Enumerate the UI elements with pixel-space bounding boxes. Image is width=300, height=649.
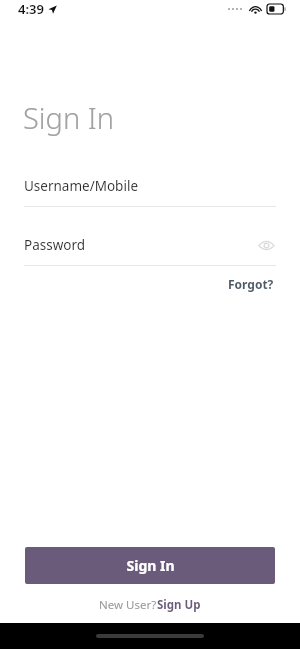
- staticText: Sign In: [126, 556, 175, 575]
- staticText: Username/Mobile: [24, 177, 138, 195]
- staticText: New User?: [99, 597, 157, 613]
- button[interactable]: Show password: [256, 235, 276, 255]
- button[interactable]: Sign Up: [157, 597, 201, 613]
- button[interactable]: Password: [24, 236, 256, 254]
- button[interactable]: Forgot?: [226, 274, 276, 294]
- button[interactable]: Username/Mobile: [24, 177, 276, 207]
- staticText: Sign Up: [157, 597, 201, 613]
- staticText: 4:39: [18, 0, 44, 18]
- button[interactable]: Sign In: [25, 547, 275, 584]
- other: Home indicator: [96, 634, 204, 638]
- staticText: Sign In: [23, 98, 115, 137]
- staticText: Forgot?: [228, 276, 274, 292]
